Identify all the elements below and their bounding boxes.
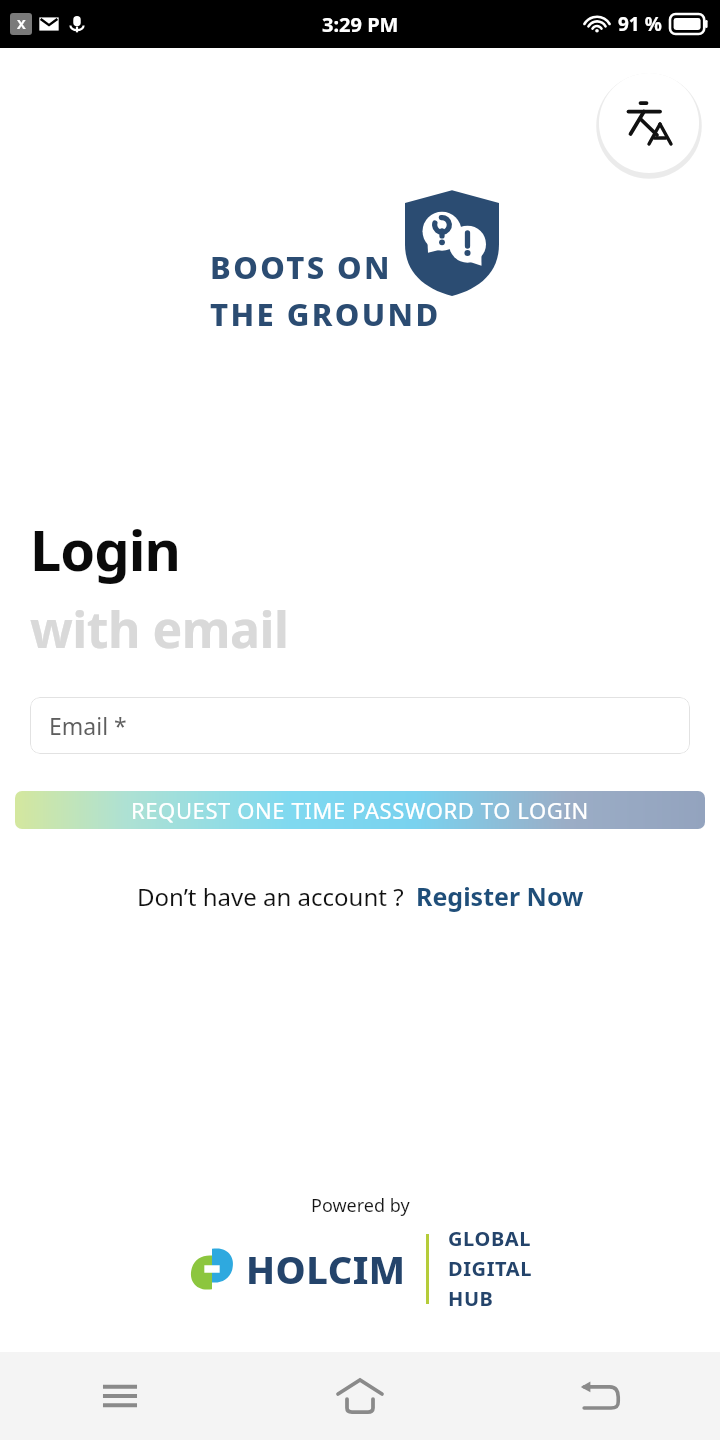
staticText: THE GROUND [210,293,441,335]
staticText: BOOTS ON [210,246,392,288]
staticText: with email [30,595,289,663]
button[interactable]: Register Now [416,879,584,913]
staticText: Email * [49,710,127,741]
staticText: GLOBAL [448,1225,531,1252]
staticText: DIGITAL [448,1255,533,1282]
staticText: Register Now [416,879,584,913]
staticText: REQUEST ONE TIME PASSWORD TO LOGIN [131,795,589,825]
staticText: Powered by [311,1193,410,1218]
button[interactable]: Back [480,1352,720,1440]
button[interactable]: REQUEST ONE TIME PASSWORD TO LOGIN [15,791,705,829]
button[interactable]: Email * [30,697,690,754]
staticText: 91 % [618,11,662,37]
button[interactable]: Translate language [601,75,697,171]
button[interactable]: Home [240,1352,480,1440]
staticText: 3:29 PM [322,11,399,38]
staticText: HUB [448,1285,494,1312]
staticText: X [17,15,26,33]
staticText: Login [30,511,180,587]
staticText: Don’t have an account ? [137,880,404,913]
staticText: HOLCIM [246,1243,406,1295]
button[interactable]: Recent apps [0,1352,240,1440]
